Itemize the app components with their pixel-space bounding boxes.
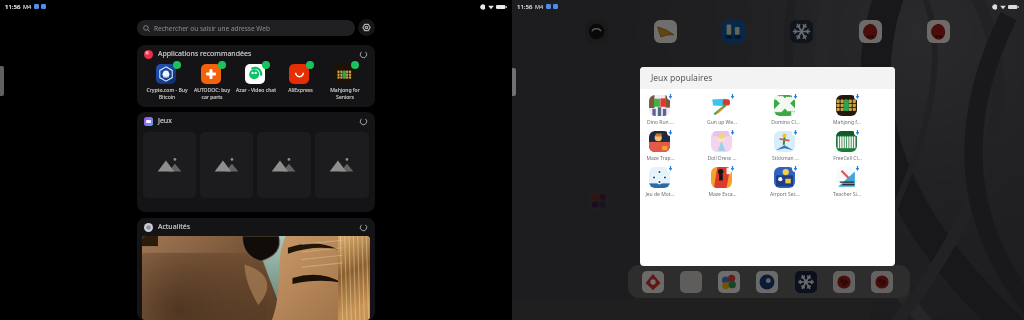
staticText: Domino Cl... xyxy=(771,119,800,126)
staticText: Dino Run ... xyxy=(647,119,674,126)
button[interactable]: Dock app 3 xyxy=(718,271,740,293)
button[interactable] xyxy=(315,132,369,198)
button[interactable]: App 4 xyxy=(790,20,813,43)
staticText: 11:56 xyxy=(517,3,533,11)
staticText: Maze Esca... xyxy=(708,191,737,198)
staticText: Jeux populaires xyxy=(651,72,713,84)
button[interactable]: Dock app 7 xyxy=(871,271,893,293)
button[interactable]: App 2 xyxy=(654,20,677,43)
button[interactable]: Settings xyxy=(358,19,375,36)
staticText: FreeCell Cl... xyxy=(833,155,862,162)
button[interactable]: Maze Trap... xyxy=(640,131,680,162)
staticText: Actualités xyxy=(158,222,191,232)
button[interactable] xyxy=(143,132,196,198)
staticText: AUTODOC: buy car parts xyxy=(190,87,234,101)
staticText: Azar - Video chat xyxy=(236,87,276,94)
button[interactable]: Doll Dress ... xyxy=(702,131,742,162)
staticText: Maze Trap... xyxy=(646,155,675,162)
button[interactable]: App 3 xyxy=(722,20,745,43)
button[interactable]: Stickman ... xyxy=(765,131,805,162)
staticText: 11:56 xyxy=(5,3,21,11)
button[interactable]: App 1 xyxy=(585,20,608,43)
button[interactable]: Teacher Si... xyxy=(827,167,867,198)
button[interactable]: Dock app 4 xyxy=(756,271,778,293)
button[interactable]: AliExpress xyxy=(278,64,322,94)
button[interactable] xyxy=(142,236,370,320)
button[interactable]: Dock app 1 xyxy=(642,271,664,293)
button[interactable]: Refresh xyxy=(358,49,369,60)
staticText: Gun up We... xyxy=(707,119,737,126)
staticText: Airport Sec... xyxy=(770,191,800,198)
button[interactable]: Gun up We... xyxy=(702,95,742,126)
button[interactable]: FreeCell Cl... xyxy=(827,131,867,162)
button[interactable]: Maze Esca... xyxy=(702,167,742,198)
button[interactable]: Dock app 2 xyxy=(680,271,702,293)
button[interactable] xyxy=(257,132,311,198)
staticText: Applications recommandées xyxy=(158,49,252,59)
button[interactable]: Mahjong for Seniors xyxy=(323,64,367,101)
button[interactable]: Airport Sec... xyxy=(765,167,805,198)
button[interactable]: Mahjong f... xyxy=(827,95,867,126)
staticText: Stickman ... xyxy=(772,155,799,162)
button[interactable]: Dino Run ... xyxy=(640,95,680,126)
staticText: Jeux xyxy=(158,116,172,126)
staticText: Mahjong for Seniors xyxy=(323,87,367,101)
button[interactable]: Dock app 6 xyxy=(833,271,855,293)
staticText: Doll Dress ... xyxy=(707,155,737,162)
button[interactable]: Domino Cl... xyxy=(765,95,805,126)
button[interactable]: Folder xyxy=(588,190,610,212)
staticText: M4 xyxy=(535,3,544,10)
staticText: Rechercher ou saisir une adresse Web xyxy=(154,24,270,33)
staticText: Jeu de Mot... xyxy=(645,191,675,198)
button[interactable]: Dock app 5 xyxy=(795,271,817,293)
button[interactable]: Refresh xyxy=(358,116,369,127)
button[interactable]: Refresh xyxy=(358,222,369,233)
button[interactable]: App 5 xyxy=(859,20,882,43)
button[interactable]: Crypto.com - Buy Bitcoin xyxy=(145,64,189,101)
button[interactable]: App 6 xyxy=(927,20,950,43)
staticText: AliExpress xyxy=(288,87,313,94)
button[interactable] xyxy=(200,132,253,198)
button[interactable]: AUTODOC: buy car parts xyxy=(190,64,234,101)
button[interactable]: Rechercher ou saisir une adresse Web xyxy=(137,20,355,36)
staticText: Crypto.com - Buy Bitcoin xyxy=(145,87,189,101)
staticText: Mahjong f... xyxy=(833,119,861,126)
staticText: Teacher Si... xyxy=(833,191,861,198)
staticText: M4 xyxy=(23,3,32,10)
button[interactable]: Jeu de Mot... xyxy=(640,167,680,198)
button[interactable]: Azar - Video chat xyxy=(234,64,278,94)
